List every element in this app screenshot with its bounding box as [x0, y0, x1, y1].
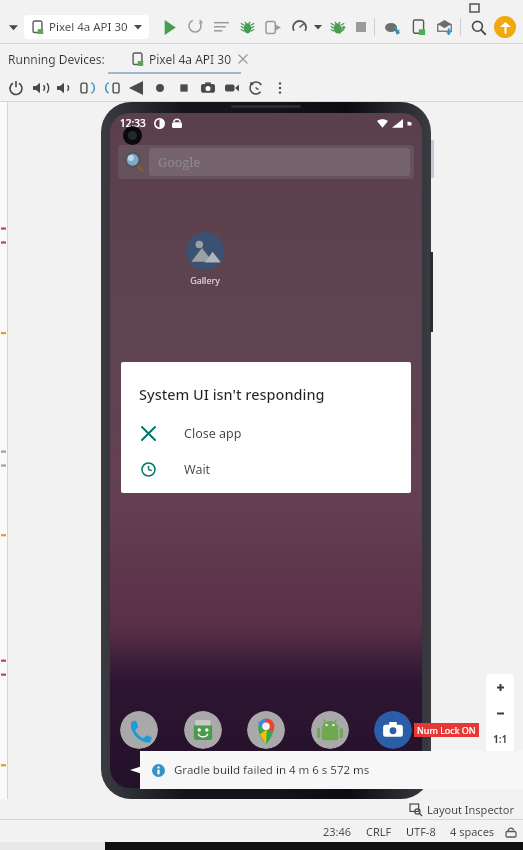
button[interactable]: Rotate right — [100, 76, 124, 100]
button[interactable]: UTF-8 — [406, 824, 436, 839]
button[interactable]: Maps — [247, 711, 285, 749]
button[interactable]: Update — [494, 16, 516, 38]
button[interactable]: Back — [168, 759, 192, 783]
staticText: 1:1 — [493, 732, 508, 746]
button[interactable]: Debug — [234, 14, 260, 40]
button[interactable]: Google — [118, 145, 414, 179]
button[interactable]: Volume up — [28, 76, 52, 100]
button[interactable]: Rotate left — [76, 76, 100, 100]
button[interactable]: 1:1 — [486, 726, 514, 752]
button[interactable]: Profile — [286, 14, 312, 40]
button[interactable]: Search — [465, 14, 491, 40]
staticText: Layout Inspector — [427, 802, 515, 817]
button[interactable]: Gallery — [176, 232, 234, 286]
staticText: Gradle build failed in 4 m 6 s 572 ms — [174, 762, 370, 778]
staticText: 12:33 — [120, 116, 146, 130]
button[interactable]: Pixel 4a API 30 — [127, 44, 252, 74]
button[interactable]: Back — [124, 76, 148, 100]
button[interactable]: Logcat — [208, 14, 234, 40]
button[interactable]: Device manager — [379, 14, 405, 40]
button[interactable]: Device mirroring — [405, 14, 431, 40]
staticText: System UI isn't responding — [139, 384, 325, 404]
button[interactable]: Run with coverage — [324, 14, 350, 40]
button[interactable]: Wait — [121, 455, 411, 483]
button[interactable]: Module menu — [2, 16, 24, 38]
button[interactable]: Lock — [505, 826, 517, 838]
button[interactable]: Phone — [120, 711, 158, 749]
button[interactable]: Messages — [184, 711, 222, 749]
button[interactable]: More — [268, 76, 292, 100]
button[interactable]: Close app — [121, 419, 411, 447]
button[interactable]: Overview — [172, 76, 196, 100]
button[interactable]: Play Store — [311, 711, 349, 749]
button[interactable]: Record — [220, 76, 244, 100]
staticText: Gallery — [190, 274, 220, 286]
button[interactable]: 4 spaces — [450, 824, 495, 839]
button[interactable]: Home — [148, 76, 172, 100]
button[interactable]: Run — [156, 14, 182, 40]
staticText: Running Devices: — [8, 51, 105, 67]
button[interactable]: CRLF — [366, 824, 392, 839]
button[interactable]: Rerun — [182, 14, 208, 40]
button[interactable]: Stop — [354, 20, 368, 34]
button[interactable]: Gradle build failed in 4 m 6 s 572 ms — [140, 751, 523, 789]
button[interactable]: Close tab — [238, 54, 248, 64]
button[interactable]: Pixel 4a API 30 — [24, 15, 149, 39]
button[interactable]: SDK download — [431, 14, 457, 40]
button[interactable]: Power — [4, 76, 28, 100]
button[interactable]: Volume down — [52, 76, 76, 100]
staticText: Close app — [184, 425, 242, 442]
button[interactable]: Layout Inspector — [410, 802, 515, 817]
staticText: Pixel 4a API 30 — [49, 19, 128, 35]
button[interactable]: Attach debugger — [260, 14, 286, 40]
button[interactable]: History — [244, 76, 268, 100]
staticText: Pixel 4a API 30 — [149, 51, 232, 67]
button[interactable]: Camera — [374, 711, 412, 749]
button[interactable]: Zoom in — [486, 674, 514, 700]
staticText: Google — [158, 153, 201, 171]
button[interactable]: Screenshot — [196, 76, 220, 100]
staticText: Wait — [184, 461, 211, 478]
staticText: 23:46 — [323, 824, 352, 839]
staticText: Num Lock ON — [417, 724, 476, 736]
button[interactable]: Zoom out — [486, 700, 514, 726]
